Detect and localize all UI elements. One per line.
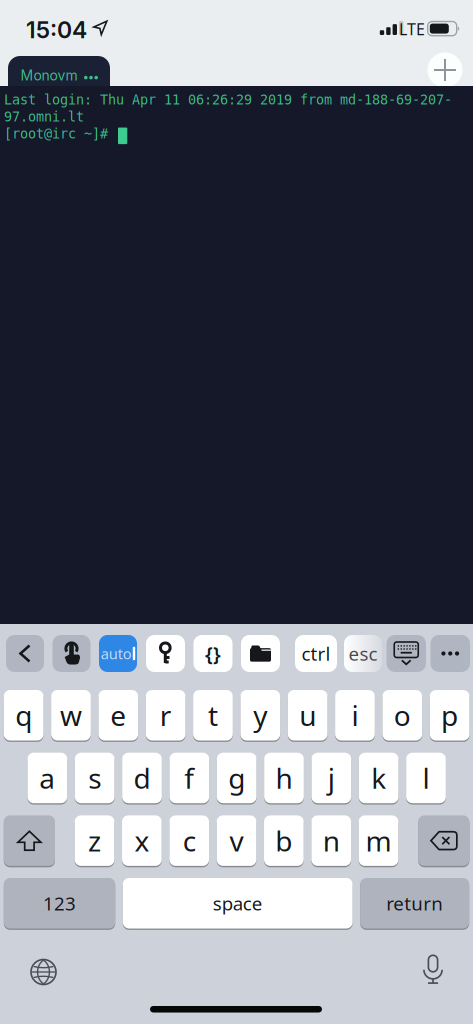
staticText: ctrl	[301, 641, 330, 666]
staticText: j	[328, 759, 335, 797]
staticText: l	[422, 759, 429, 797]
staticText: a	[39, 759, 55, 797]
staticText: b	[275, 822, 292, 859]
staticText: x	[134, 822, 149, 859]
staticText: 123	[43, 891, 76, 916]
staticText: LTE	[399, 18, 425, 40]
staticText: f	[184, 759, 194, 797]
staticText: d	[133, 759, 150, 797]
staticText: v	[229, 822, 243, 859]
staticText: space	[213, 891, 263, 916]
staticText: q	[15, 697, 32, 734]
staticText: s	[88, 759, 101, 797]
staticText: c	[183, 822, 196, 859]
staticText: r	[160, 697, 172, 734]
staticText: z	[88, 822, 101, 859]
staticText: g	[228, 759, 245, 797]
staticText: Last login: Thu Apr 11 06:26:29 2019 fro…	[4, 92, 452, 108]
staticText: [root@irc ~]#	[4, 126, 108, 142]
staticText: Monovm	[20, 67, 77, 84]
staticText: n	[323, 822, 340, 859]
staticText: i	[351, 697, 358, 734]
staticText: p	[441, 697, 458, 734]
staticText: 15:04	[26, 16, 87, 44]
staticText: return	[386, 891, 443, 916]
staticText: k	[371, 759, 386, 797]
staticText: y	[253, 697, 267, 734]
staticText: m	[365, 822, 391, 859]
staticText: 97.omni.lt	[4, 109, 84, 125]
staticText: h	[275, 759, 292, 797]
staticText: u	[299, 697, 316, 734]
staticText: auto	[101, 644, 132, 663]
staticText: w	[60, 697, 82, 734]
staticText: e	[110, 697, 126, 734]
staticText: {}	[205, 640, 221, 667]
staticText: o	[394, 697, 411, 734]
staticText: esc	[348, 641, 377, 666]
staticText: t	[208, 697, 218, 734]
